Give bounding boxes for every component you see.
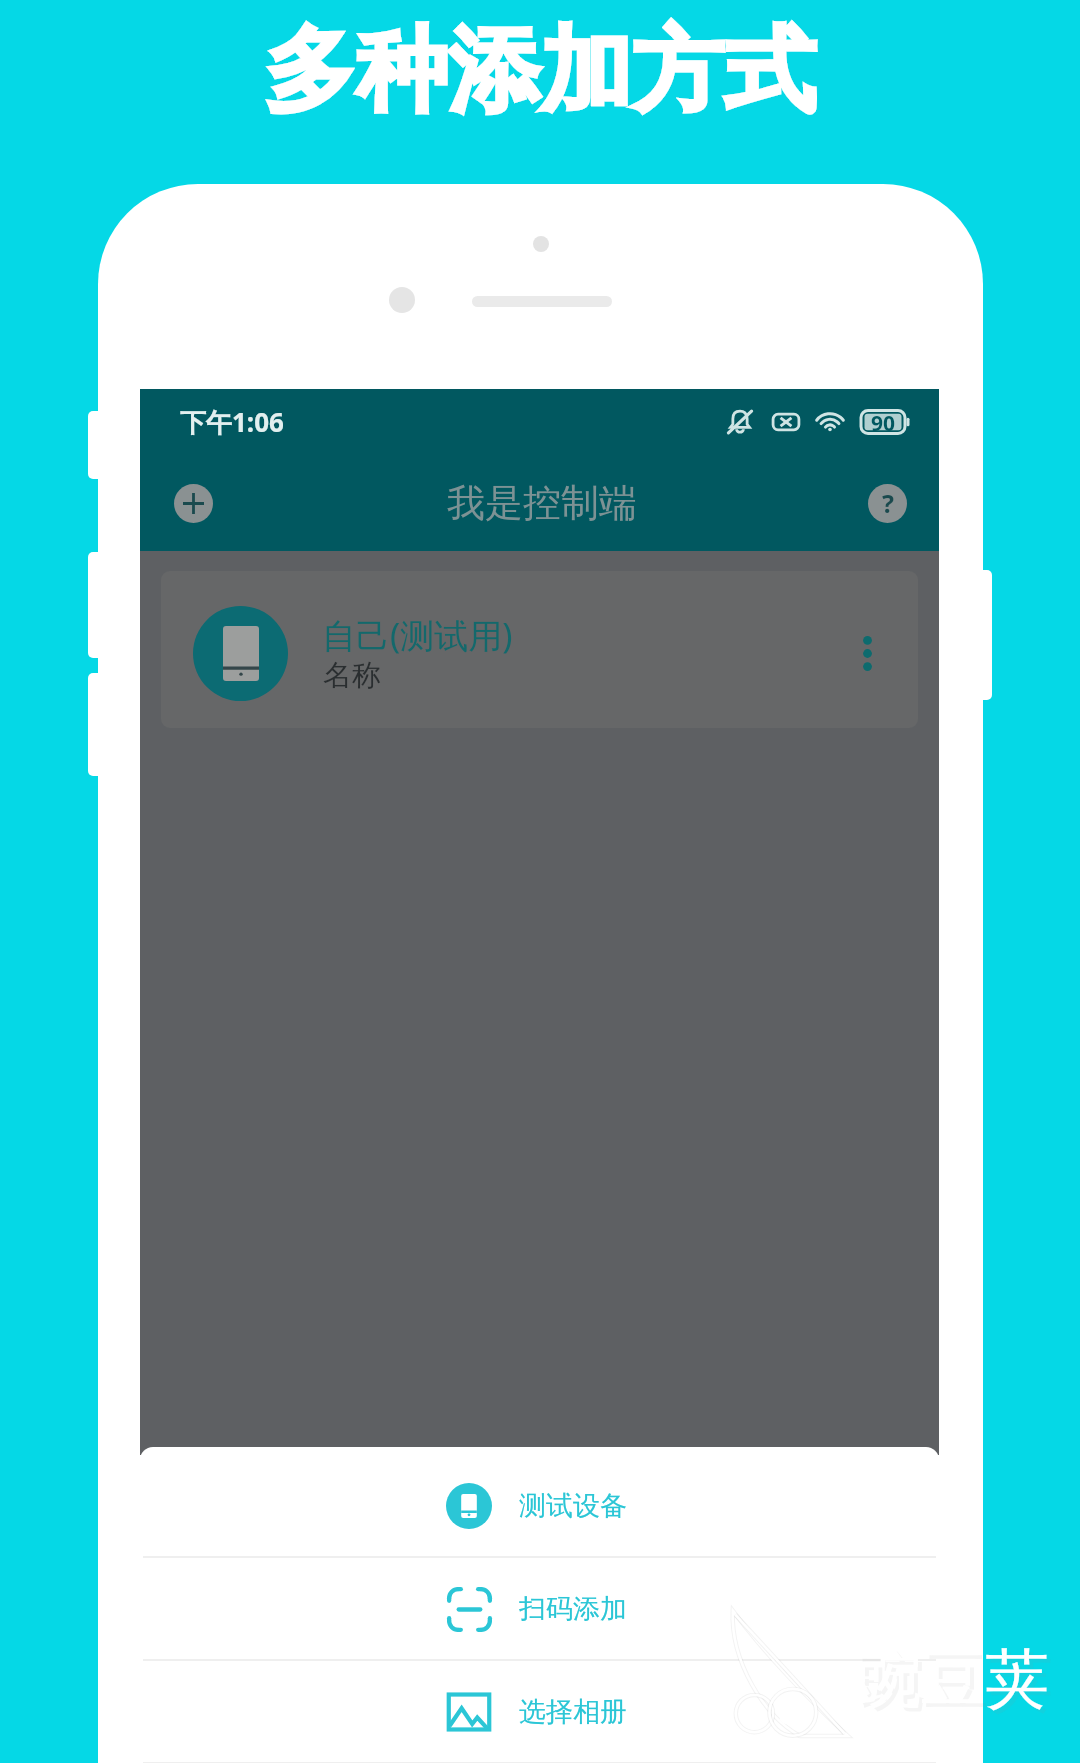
button[interactable]: 测试设备 (140, 1455, 939, 1556)
button[interactable]: Help (868, 484, 907, 523)
staticText: 下午1:06 (180, 404, 284, 440)
staticText: 名称 (323, 657, 381, 694)
staticText: 豌豆荚 (861, 1643, 1053, 1724)
staticText: 90 (871, 409, 896, 435)
button[interactable]: Add device (174, 484, 213, 523)
staticText: 豌豆荚 (857, 1639, 1049, 1720)
staticText: 选择相册 (519, 1695, 627, 1729)
button[interactable]: 选择相册 (140, 1661, 939, 1762)
staticText: 扫码添加 (519, 1592, 627, 1626)
staticText: 自己(测试用) (322, 612, 513, 658)
button[interactable]: 自己(测试用) (161, 571, 918, 728)
button[interactable]: 扫码添加 (140, 1558, 939, 1659)
staticText: 多种添加方式 (264, 13, 816, 129)
staticText: ? (882, 486, 894, 520)
button[interactable]: More options (844, 620, 890, 686)
staticText: 测试设备 (519, 1489, 627, 1523)
staticText: 我是控制端 (447, 479, 637, 527)
